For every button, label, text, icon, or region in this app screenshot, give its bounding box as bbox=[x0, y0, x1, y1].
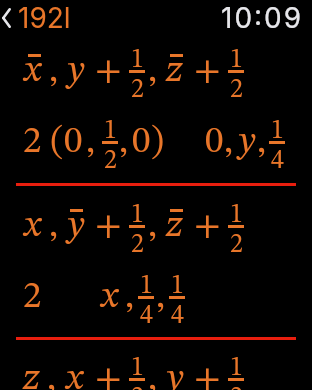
staticText: ( bbox=[50, 124, 64, 161]
staticText: 0 bbox=[64, 124, 83, 161]
staticText: 1 bbox=[131, 47, 144, 73]
staticText: 𝑥 bbox=[64, 361, 85, 390]
staticText: 1 bbox=[230, 355, 243, 381]
staticText: 2 bbox=[230, 385, 243, 390]
staticText: , bbox=[49, 208, 59, 245]
staticText: + bbox=[95, 53, 122, 90]
staticText: 𝑥 bbox=[22, 208, 43, 245]
staticText: + bbox=[194, 53, 221, 90]
staticText: 𝑧 bbox=[22, 361, 41, 390]
other: Back bbox=[2, 8, 11, 28]
staticText: + bbox=[95, 208, 122, 245]
staticText: , bbox=[224, 124, 234, 161]
staticText: , bbox=[49, 53, 59, 90]
staticText: 𝑦 bbox=[66, 53, 85, 90]
staticText: , bbox=[148, 53, 158, 90]
staticText: 𝑦 bbox=[66, 208, 85, 245]
staticText: , bbox=[47, 361, 57, 390]
staticText: 1 bbox=[271, 118, 284, 144]
staticText: 𝑦 bbox=[237, 124, 256, 161]
staticText: , bbox=[156, 279, 166, 316]
staticText: 1 bbox=[230, 202, 243, 228]
staticText: 4 bbox=[140, 303, 153, 329]
staticText: ) bbox=[151, 124, 165, 161]
staticText: 1 bbox=[230, 47, 243, 73]
staticText: , bbox=[148, 361, 158, 390]
staticText: 4 bbox=[271, 148, 284, 174]
staticText: 𝑧 bbox=[165, 53, 184, 90]
staticText: 2 bbox=[131, 232, 144, 258]
staticText: + bbox=[194, 361, 221, 390]
staticText: 0 bbox=[205, 124, 224, 161]
staticText: + bbox=[194, 208, 221, 245]
staticText: , bbox=[257, 124, 267, 161]
staticText: 2 bbox=[230, 77, 243, 103]
staticText: 2 bbox=[23, 279, 42, 316]
staticText: 0 bbox=[132, 124, 151, 161]
staticText: , bbox=[119, 124, 129, 161]
staticText: 192l bbox=[18, 1, 71, 35]
staticText: 1 bbox=[171, 273, 184, 299]
staticText: , bbox=[86, 124, 96, 161]
staticText: 10:09 bbox=[221, 1, 304, 35]
staticText: 1 bbox=[131, 355, 144, 381]
staticText: 1 bbox=[140, 273, 153, 299]
staticText: , bbox=[148, 208, 158, 245]
staticText: 2 bbox=[23, 124, 42, 161]
staticText: 4 bbox=[171, 303, 184, 329]
staticText: 𝑧 bbox=[165, 208, 184, 245]
staticText: 2 bbox=[230, 232, 243, 258]
staticText: 𝑥 bbox=[99, 279, 120, 316]
staticText: 𝑦 bbox=[165, 361, 184, 390]
staticText: 1 bbox=[131, 202, 144, 228]
staticText: 2 bbox=[131, 385, 144, 390]
staticText: 2 bbox=[131, 77, 144, 103]
staticText: 𝑥 bbox=[22, 53, 43, 90]
button[interactable]: Back bbox=[0, 1, 79, 35]
staticText: 1 bbox=[104, 118, 117, 144]
staticText: 2 bbox=[104, 148, 117, 174]
staticText: + bbox=[95, 361, 122, 390]
staticText: , bbox=[125, 279, 135, 316]
